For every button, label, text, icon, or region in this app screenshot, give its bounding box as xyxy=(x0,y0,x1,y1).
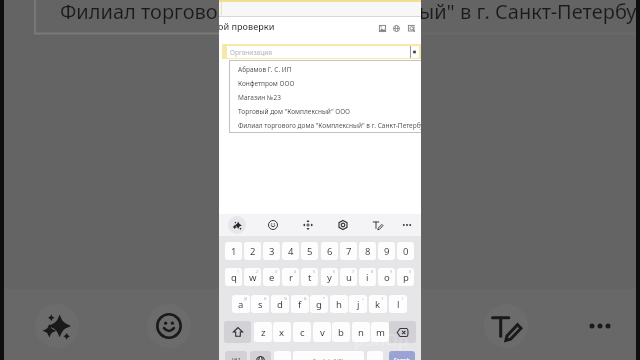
button[interactable]: 6 xyxy=(321,242,338,260)
staticText: @ xyxy=(244,296,248,301)
button[interactable]: Филиал торгового дома "Комплексный" в г.… xyxy=(229,118,421,132)
staticText: u xyxy=(346,271,352,284)
button[interactable]: y xyxy=(321,268,338,286)
staticText: ( xyxy=(382,296,384,301)
staticText: Search xyxy=(394,357,410,360)
button[interactable]: Web link xyxy=(391,23,402,34)
button[interactable]: Find on page xyxy=(406,23,417,34)
staticText: b xyxy=(338,326,344,339)
button[interactable]: More options xyxy=(578,310,622,342)
button[interactable]: Handwriting xyxy=(369,216,387,234)
button[interactable]: Магазин №23 xyxy=(229,90,421,104)
staticText: i xyxy=(366,271,369,284)
staticText: x xyxy=(279,326,285,339)
button[interactable]: Smart compose xyxy=(35,304,79,348)
staticText: k xyxy=(375,298,381,311)
button[interactable]: Emoji xyxy=(147,304,191,348)
staticText: 5 xyxy=(307,245,313,258)
staticText: Торговый дом "Комплексный" ООО xyxy=(238,107,351,116)
button[interactable]: More xyxy=(398,216,416,234)
button[interactable]: 5 xyxy=(301,242,318,260)
button[interactable]: u xyxy=(340,268,357,286)
button[interactable]: l xyxy=(389,295,407,313)
button[interactable]: s xyxy=(251,295,269,313)
button[interactable]: 8 xyxy=(359,242,376,260)
button[interactable]: Торговый дом "Комплексный" ООО xyxy=(229,104,421,118)
staticText: e xyxy=(269,271,275,284)
button[interactable]: Move cursor xyxy=(299,216,317,234)
staticText: t xyxy=(308,271,312,284)
staticText: a xyxy=(238,298,244,311)
button[interactable]: Emoji xyxy=(264,216,282,234)
staticText: & xyxy=(304,296,307,301)
button[interactable]: 1 xyxy=(225,242,242,260)
button[interactable]: r xyxy=(282,268,299,286)
button[interactable]: Конфетпром ООО xyxy=(229,76,421,90)
button[interactable]: Open list xyxy=(410,46,419,58)
staticText: Абрамов Г. С. ИП xyxy=(238,65,292,74)
staticText: # xyxy=(264,296,267,301)
button[interactable]: m xyxy=(371,322,389,342)
button[interactable]: 3 xyxy=(263,242,280,260)
button[interactable]: Организация xyxy=(227,46,410,58)
staticText: g xyxy=(316,298,322,311)
button[interactable]: 0 xyxy=(397,242,414,260)
staticText: n xyxy=(358,326,364,339)
button[interactable]: Save picture xyxy=(377,23,388,34)
button[interactable]: English (US) xyxy=(293,351,364,360)
button[interactable]: h xyxy=(330,295,348,313)
staticText: 1 xyxy=(237,269,240,274)
staticText: 2 xyxy=(250,245,256,258)
button[interactable]: e xyxy=(263,268,280,286)
button[interactable]: z xyxy=(254,322,272,342)
button[interactable]: Handwriting xyxy=(484,304,528,348)
staticText: * xyxy=(323,296,325,301)
button[interactable]: 9 xyxy=(378,242,395,260)
button[interactable]: w xyxy=(244,268,261,286)
staticText: ой проверки xyxy=(219,20,275,32)
staticText: Организация xyxy=(230,48,272,57)
button[interactable]: Change language xyxy=(250,351,271,360)
button[interactable]: Stickers xyxy=(334,216,352,234)
staticText: 9 xyxy=(384,245,390,258)
button[interactable]: d xyxy=(271,295,289,313)
staticText: 4 xyxy=(294,269,297,274)
button[interactable]: Backspace xyxy=(389,321,416,343)
staticText: 4 xyxy=(288,245,294,258)
button[interactable]: q xyxy=(225,268,242,286)
button[interactable]: !#1 xyxy=(225,351,247,360)
staticText: 8 xyxy=(365,245,371,258)
staticText: h xyxy=(336,298,342,311)
button[interactable]: f xyxy=(291,295,309,313)
staticText: 2 xyxy=(256,269,259,274)
staticText: 3 xyxy=(275,269,278,274)
staticText: !#1 xyxy=(232,356,241,360)
button[interactable]: n xyxy=(352,322,370,342)
button[interactable]: j xyxy=(349,295,367,313)
button[interactable]: b xyxy=(332,322,350,342)
staticText: 7 xyxy=(352,269,355,274)
button[interactable]: k xyxy=(369,295,387,313)
staticText: 3 xyxy=(269,245,275,258)
button[interactable]: i xyxy=(359,268,376,286)
button[interactable]: c xyxy=(293,322,311,342)
button[interactable]: t xyxy=(301,268,318,286)
button[interactable]: a xyxy=(232,295,250,313)
button[interactable]: x xyxy=(273,322,291,342)
staticText: q xyxy=(231,271,237,284)
staticText: z xyxy=(261,326,266,339)
button[interactable]: 2 xyxy=(244,242,261,260)
button[interactable]: Абрамов Г. С. ИП xyxy=(229,62,421,76)
button[interactable]: p xyxy=(397,268,414,286)
button[interactable]: Search xyxy=(389,351,415,360)
button[interactable]: Shift xyxy=(224,321,251,343)
button[interactable]: o xyxy=(378,268,395,286)
button[interactable]: g xyxy=(310,295,328,313)
staticText: l xyxy=(397,298,400,311)
button[interactable]: Smart reply xyxy=(228,216,246,234)
button[interactable]: 7 xyxy=(340,242,357,260)
button[interactable]: 4 xyxy=(282,242,299,260)
button[interactable]: v xyxy=(313,322,331,342)
